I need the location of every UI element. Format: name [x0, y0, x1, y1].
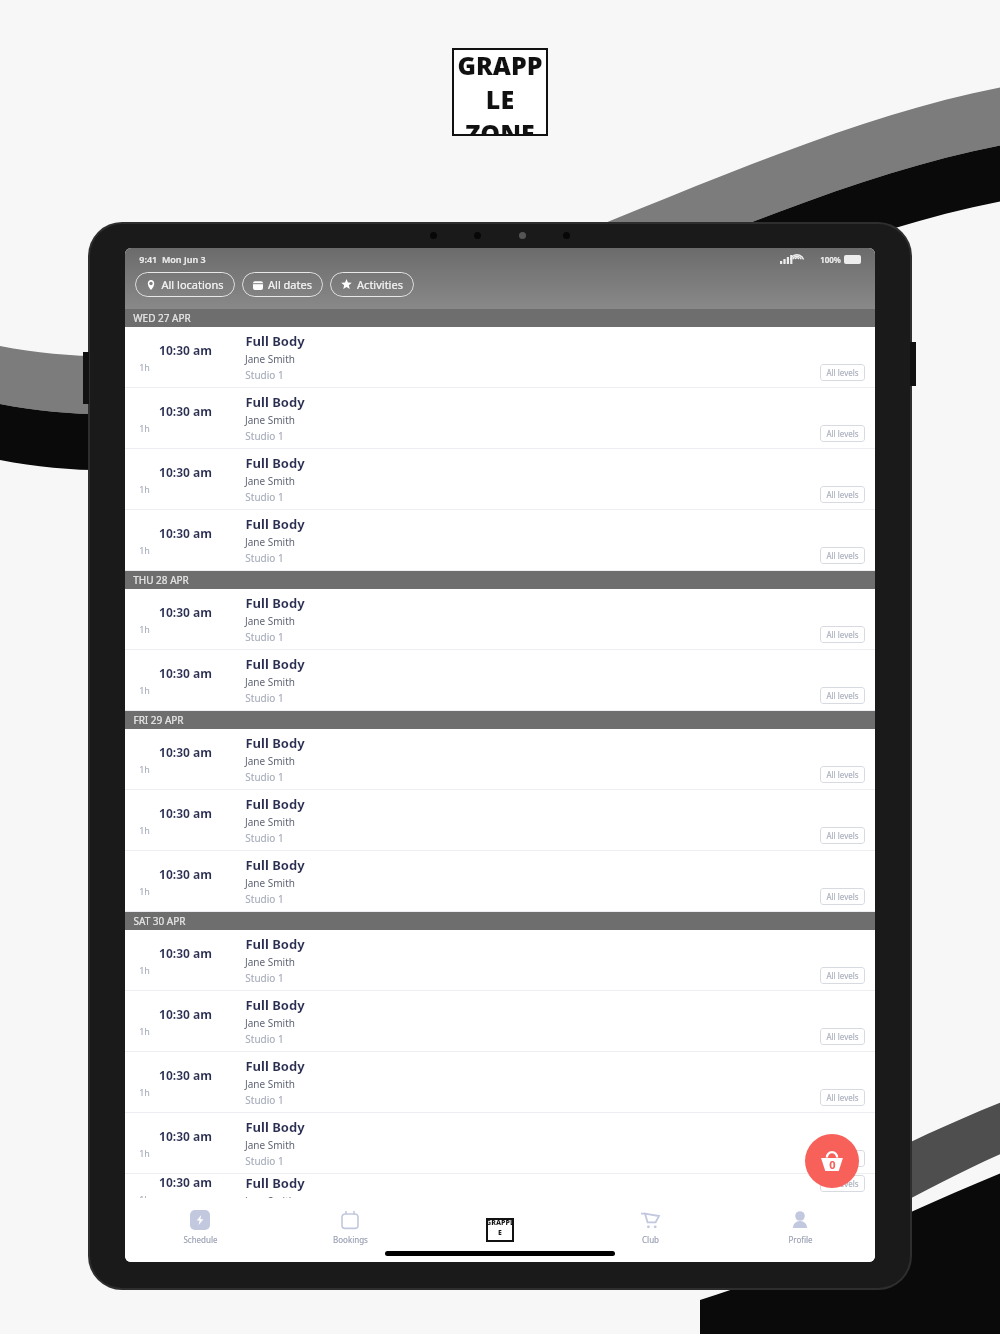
button[interactable]: 10:30 am — [125, 790, 875, 850]
button[interactable]: 10:30 am — [125, 851, 875, 911]
staticText: 1h — [139, 483, 150, 495]
staticText: Full Body — [245, 795, 305, 813]
button[interactable]: Club — [575, 1198, 725, 1262]
staticText: All levels — [826, 1178, 859, 1189]
button[interactable]: 10:30 am — [125, 510, 875, 570]
button[interactable]: 10:30 am — [125, 1174, 875, 1198]
staticText: 10:30 am — [159, 342, 212, 358]
button[interactable]: All levels — [820, 1150, 865, 1167]
staticText: Jane Smith — [245, 474, 295, 488]
staticText: Full Body — [245, 1118, 305, 1136]
staticText: 1h — [139, 1025, 150, 1037]
staticText: All levels — [826, 1031, 859, 1042]
button[interactable]: 10:30 am — [125, 930, 875, 990]
staticText: 10:30 am — [159, 1174, 212, 1190]
staticText: All levels — [826, 428, 859, 439]
staticText: Studio 1 — [245, 429, 284, 443]
staticText: Full Body — [245, 1174, 305, 1192]
staticText: 10:30 am — [159, 403, 212, 419]
button[interactable]: All levels — [820, 888, 865, 905]
staticText: Jane Smith — [245, 1194, 295, 1198]
button[interactable]: All levels — [820, 766, 865, 783]
staticText: Bookings — [333, 1234, 368, 1245]
button[interactable]: Bookings — [275, 1198, 425, 1262]
button[interactable]: Schedule — [125, 1198, 275, 1262]
button[interactable]: All locations — [135, 272, 235, 297]
staticText: Studio 1 — [245, 1154, 284, 1168]
staticText: Studio 1 — [245, 691, 284, 705]
staticText: Full Body — [245, 935, 305, 953]
staticText: Studio 1 — [245, 892, 284, 906]
staticText: All dates — [268, 277, 312, 292]
staticText: FRI 29 APR — [133, 713, 184, 727]
staticText: Jane Smith — [245, 413, 295, 427]
staticText: All levels — [826, 367, 859, 378]
staticText: 100% — [820, 254, 841, 265]
staticText: THU 28 APR — [133, 573, 189, 587]
button[interactable]: All levels — [820, 1175, 865, 1192]
staticText: 1h — [139, 964, 150, 976]
button[interactable]: 10:30 am — [125, 449, 875, 509]
staticText: 9:41 Mon Jun 3 — [139, 253, 206, 265]
staticText: GRAPPLE — [486, 1218, 514, 1238]
button[interactable]: All levels — [820, 425, 865, 442]
staticText: All levels — [826, 970, 859, 981]
staticText: 1h — [139, 544, 150, 556]
staticText: GRAPPLE — [452, 48, 548, 116]
staticText: Full Body — [245, 856, 305, 874]
staticText: 1h — [139, 1086, 150, 1098]
staticText: 1h — [139, 763, 150, 775]
staticText: Jane Smith — [245, 754, 295, 768]
staticText: Studio 1 — [245, 971, 284, 985]
staticText: Jane Smith — [245, 955, 295, 969]
button[interactable]: 10:30 am — [125, 1113, 875, 1173]
button[interactable]: All levels — [820, 364, 865, 381]
button[interactable]: Grapple Zone logo — [452, 48, 548, 136]
button[interactable]: All levels — [820, 1028, 865, 1045]
button[interactable]: 10:30 am — [125, 589, 875, 649]
button[interactable]: Home — [478, 1208, 522, 1252]
button[interactable]: All levels — [820, 827, 865, 844]
staticText: All levels — [826, 769, 859, 780]
staticText: Full Body — [245, 734, 305, 752]
button[interactable]: 10:30 am — [125, 388, 875, 448]
staticText: Full Body — [245, 996, 305, 1014]
staticText: All levels — [826, 891, 859, 902]
staticText: Jane Smith — [245, 1016, 295, 1030]
staticText: 10:30 am — [159, 464, 212, 480]
staticText: 10:30 am — [159, 1067, 212, 1083]
staticText: 1h — [139, 361, 150, 373]
button[interactable]: Profile — [725, 1198, 875, 1262]
staticText: Studio 1 — [245, 490, 284, 504]
staticText: All levels — [826, 489, 859, 500]
staticText: 10:30 am — [159, 744, 212, 760]
staticText: Full Body — [245, 515, 305, 533]
button[interactable]: All levels — [820, 1089, 865, 1106]
button[interactable]: 10:30 am — [125, 1052, 875, 1112]
staticText: Activities — [357, 277, 403, 292]
button[interactable]: All levels — [820, 687, 865, 704]
staticText: Studio 1 — [245, 831, 284, 845]
staticText: Jane Smith — [245, 1077, 295, 1091]
button[interactable]: Cart, 0 items — [805, 1134, 859, 1188]
button[interactable]: All levels — [820, 967, 865, 984]
staticText: 1h — [139, 422, 150, 434]
button[interactable]: All levels — [820, 626, 865, 643]
staticText: 10:30 am — [159, 945, 212, 961]
button[interactable]: All levels — [820, 547, 865, 564]
button[interactable]: 10:30 am — [125, 650, 875, 710]
button[interactable]: 10:30 am — [125, 991, 875, 1051]
button[interactable]: 10:30 am — [125, 327, 875, 387]
staticText: All locations — [161, 277, 224, 292]
button[interactable]: Activities — [330, 272, 414, 297]
staticText: Full Body — [245, 655, 305, 673]
staticText: SAT 30 APR — [133, 914, 186, 928]
staticText: All levels — [826, 1092, 859, 1103]
button[interactable]: All levels — [820, 486, 865, 503]
staticText: Full Body — [245, 454, 305, 472]
staticText: Jane Smith — [245, 675, 295, 689]
staticText: Full Body — [245, 1057, 305, 1075]
button[interactable]: All dates — [242, 272, 323, 297]
button[interactable]: 10:30 am — [125, 729, 875, 789]
staticText: 10:30 am — [159, 525, 212, 541]
